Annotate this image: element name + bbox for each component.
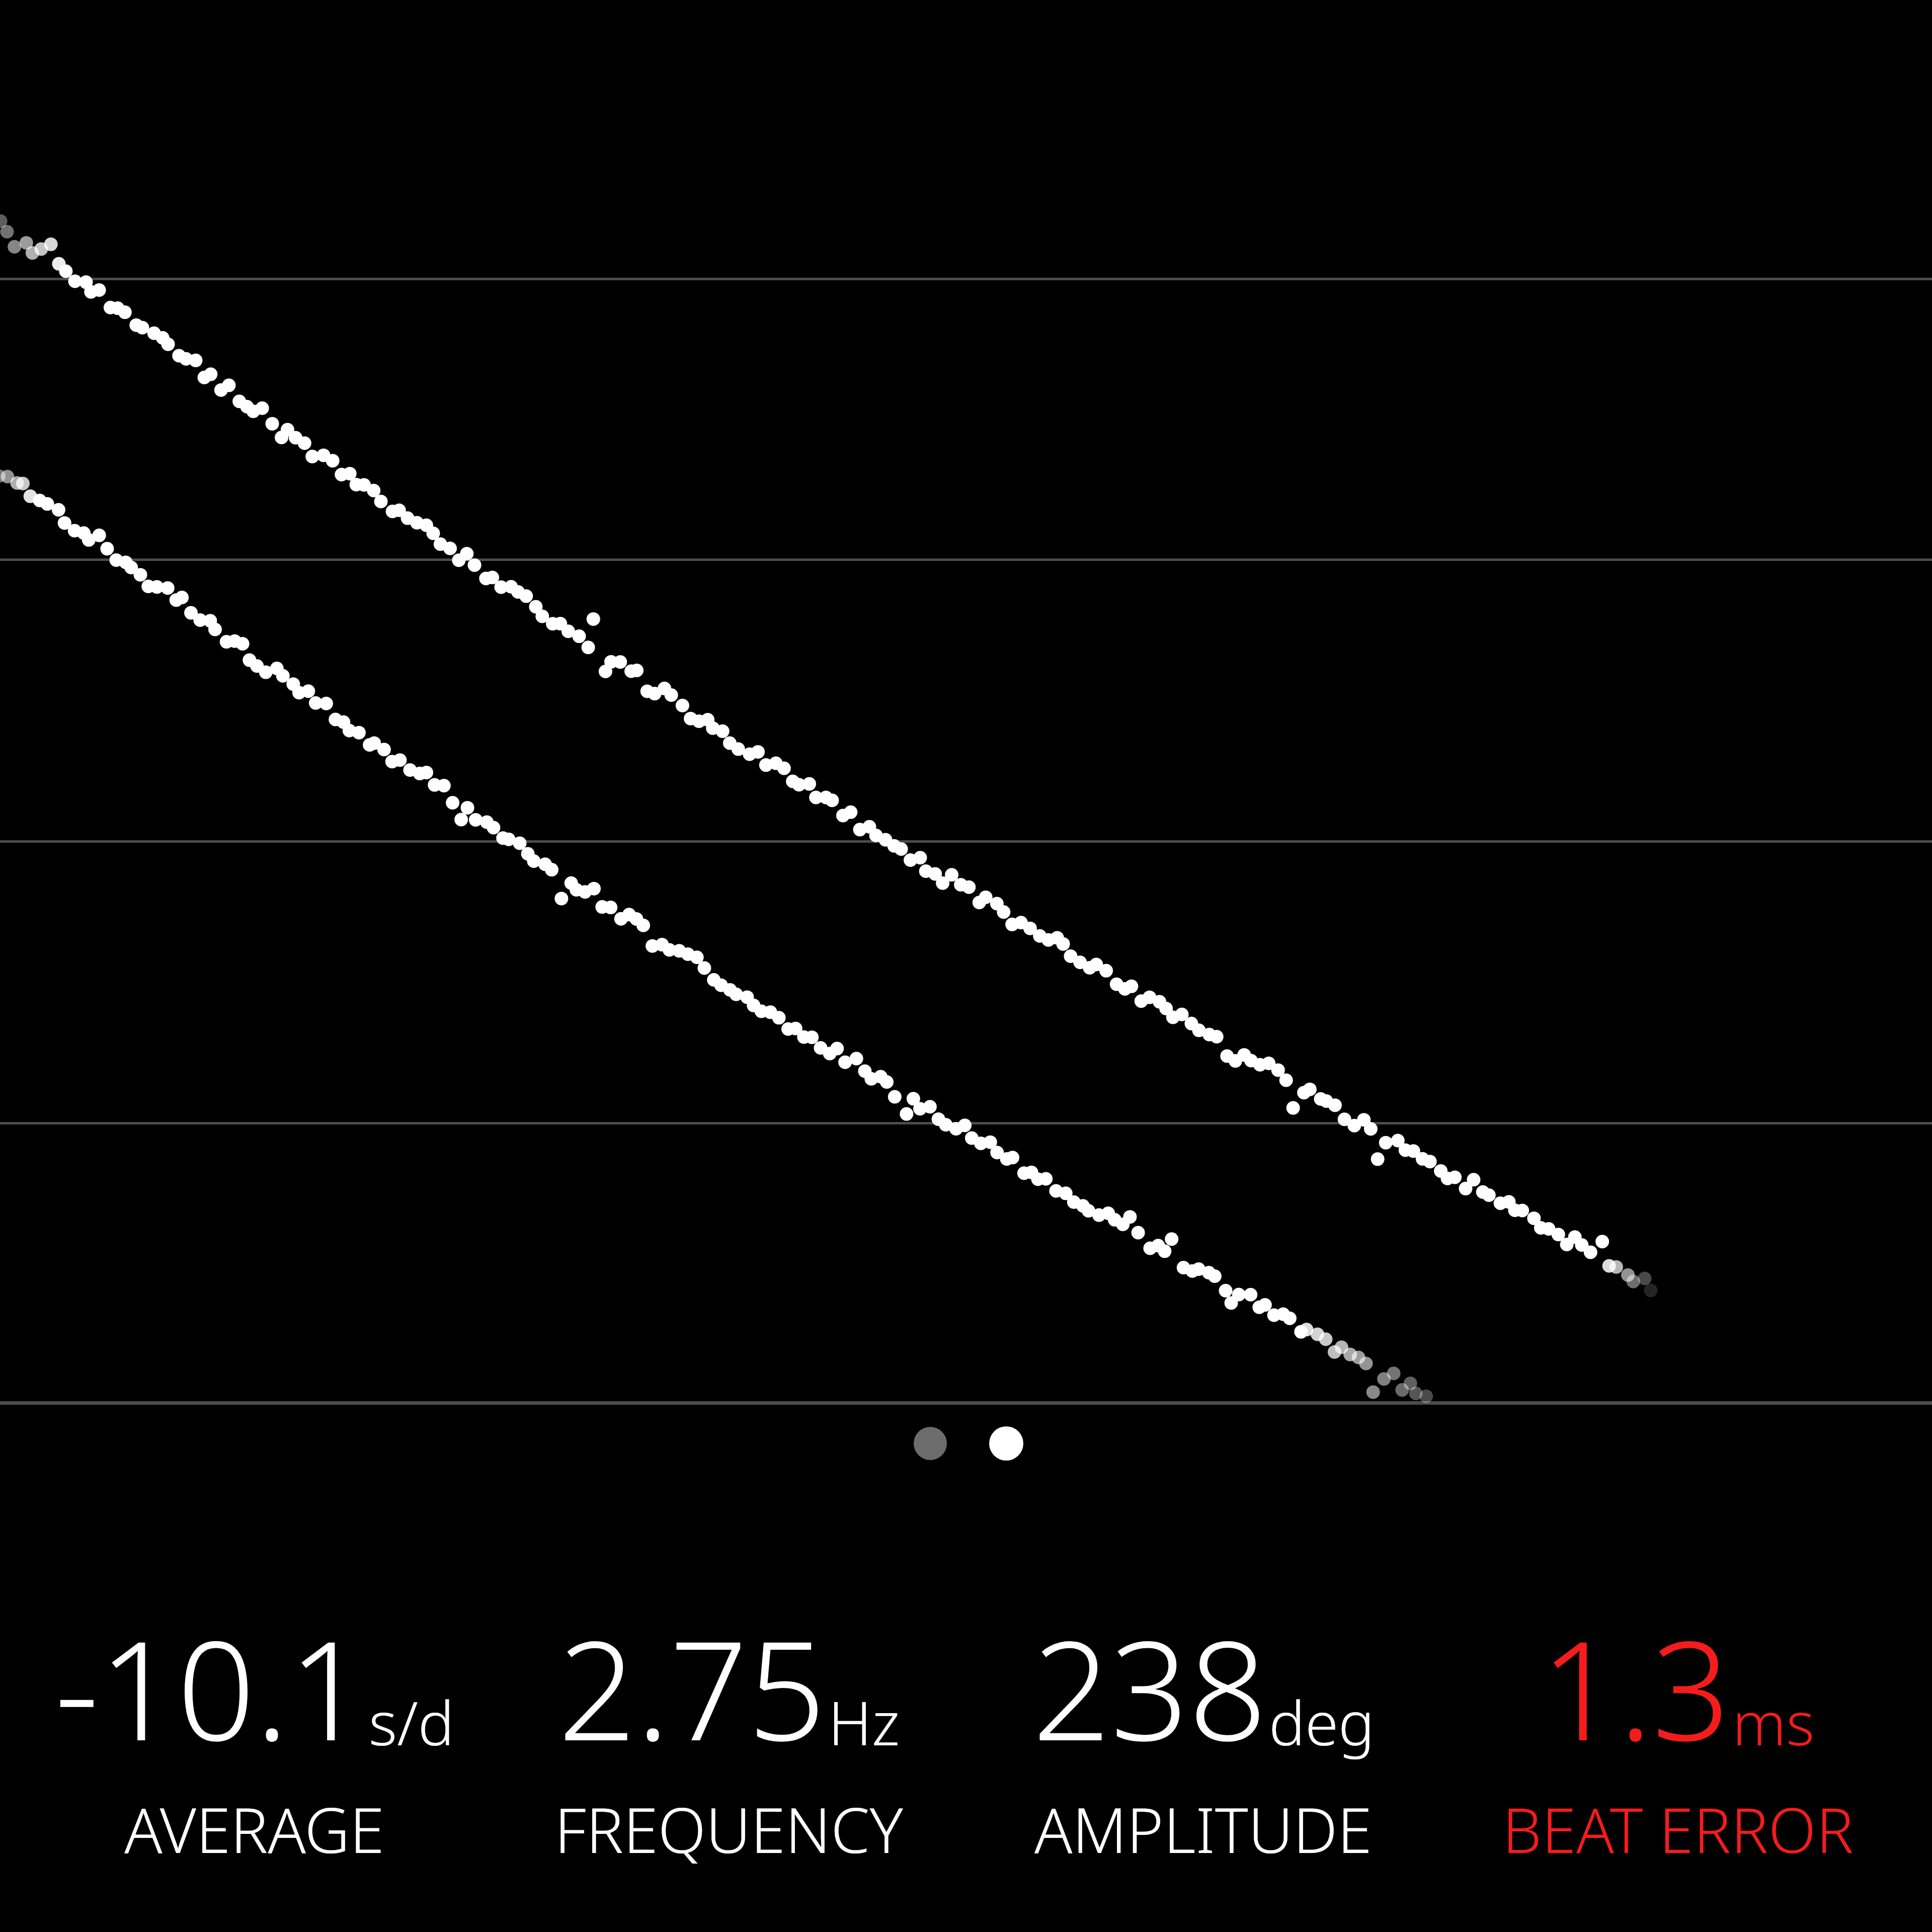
button[interactable]: 238 <box>966 1594 1440 1871</box>
button[interactable]: Page 2 <box>989 1426 1023 1461</box>
staticText: ms <box>1732 1681 1815 1763</box>
staticText: 1.3 <box>1541 1594 1730 1780</box>
button[interactable]: Page 1 <box>914 1427 947 1460</box>
staticText: deg <box>1269 1681 1375 1763</box>
staticText: 238 <box>1032 1594 1267 1780</box>
staticText: AVERAGE <box>124 1786 384 1871</box>
staticText: Hz <box>828 1681 900 1763</box>
staticText: FREQUENCY <box>554 1786 903 1871</box>
staticText: -10.1 <box>55 1594 367 1780</box>
staticText: BEAT ERROR <box>1502 1786 1854 1871</box>
button[interactable]: 1.3 <box>1440 1594 1915 1871</box>
staticText: 2.75 <box>558 1594 826 1780</box>
staticText: s/d <box>369 1681 454 1763</box>
button[interactable]: -10.1 <box>17 1594 492 1871</box>
button[interactable]: 2.75 <box>492 1594 966 1871</box>
staticText: AMPLITUDE <box>1034 1786 1372 1871</box>
